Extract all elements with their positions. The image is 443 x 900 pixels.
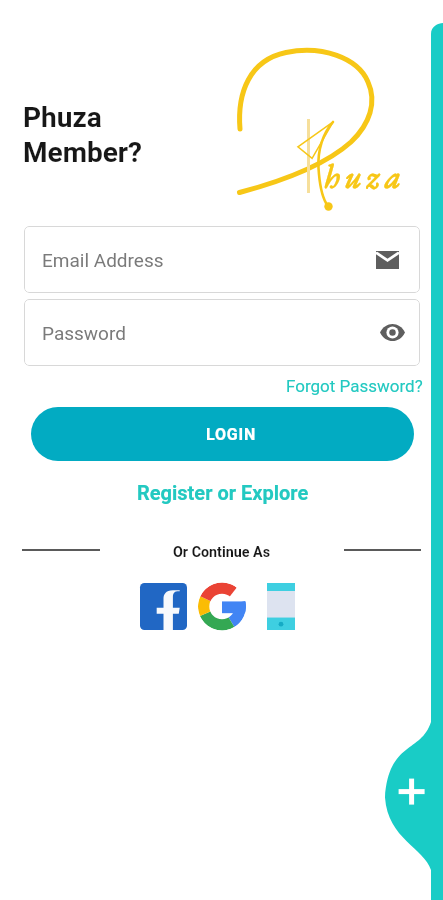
staticText: Email Address xyxy=(42,249,164,271)
staticText: Phuza Member? xyxy=(23,101,142,169)
staticText: huza xyxy=(324,155,407,197)
button[interactable]: LOGIN xyxy=(31,407,414,461)
staticText: Forgot Password? xyxy=(286,376,423,396)
staticText: Or Continue As xyxy=(173,544,271,561)
staticText: LOGIN xyxy=(206,425,257,444)
button[interactable]: Continue with phone number xyxy=(267,583,295,630)
button[interactable]: Register or Explore xyxy=(111,476,334,508)
staticText: Register or Explore xyxy=(137,481,309,504)
button[interactable]: Continue with Facebook xyxy=(140,583,187,630)
button[interactable]: Continue with Google xyxy=(198,583,246,630)
button[interactable]: Forgot Password? xyxy=(282,374,423,398)
staticText: Password xyxy=(42,322,126,344)
button[interactable]: Email Address xyxy=(24,226,420,293)
button[interactable]: Add xyxy=(0,0,443,900)
button[interactable]: Password xyxy=(24,299,420,366)
